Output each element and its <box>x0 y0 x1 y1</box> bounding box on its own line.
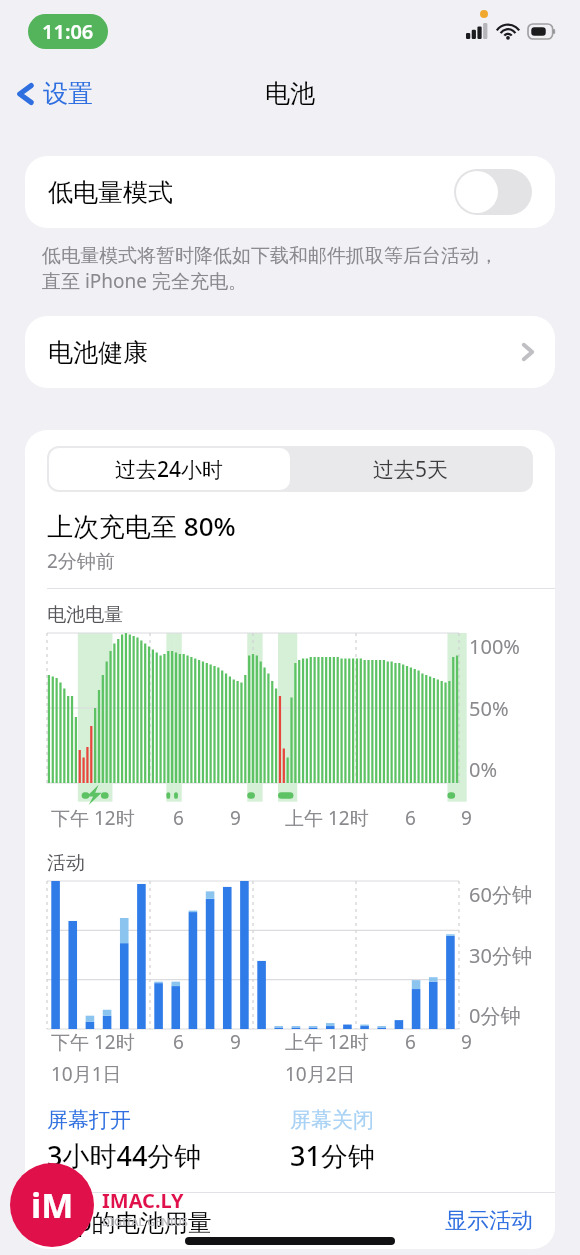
staticText: 60分钟 <box>469 881 532 908</box>
staticText: 0% <box>469 756 498 783</box>
button[interactable]: 过去24小时 <box>49 448 290 490</box>
staticText: 6 <box>173 1029 184 1055</box>
staticText: 10月2日 <box>285 1061 356 1087</box>
staticText: 下午 12时 <box>51 805 135 831</box>
button[interactable]: App的电池用量 <box>25 1193 555 1249</box>
staticText: App的电池用量 <box>47 1205 445 1238</box>
staticText: DIGITAL GENIUS <box>102 1214 188 1229</box>
staticText: 屏幕关闭 <box>290 1107 374 1133</box>
staticText: 3小时44分钟 <box>47 1137 202 1174</box>
staticText: 电池健康 <box>48 337 521 368</box>
staticText: 上午 12时 <box>285 1029 369 1055</box>
staticText: 6 <box>173 805 184 831</box>
staticText: 10月1日 <box>51 1061 122 1087</box>
staticText: 显示活动 <box>445 1207 533 1235</box>
staticText: 50% <box>469 695 509 722</box>
staticText: 6 <box>405 805 416 831</box>
button[interactable]: 电池健康 <box>25 316 555 388</box>
staticText: 上午 12时 <box>285 805 369 831</box>
staticText: 31分钟 <box>290 1137 375 1174</box>
staticText: 活动 <box>47 851 85 875</box>
staticText: 11:06 <box>42 18 94 45</box>
staticText: iM <box>31 1182 74 1228</box>
staticText: 低电量模式将暂时降低如下载和邮件抓取等后台活动， <box>42 244 498 268</box>
button[interactable]: 低电量模式 <box>25 156 555 228</box>
staticText: 上次充电至 80% <box>47 508 236 544</box>
staticText: 2分钟前 <box>47 548 115 574</box>
staticText: 6 <box>405 1029 416 1055</box>
staticText: 过去5天 <box>373 455 449 484</box>
staticText: 屏幕打开 <box>47 1107 131 1133</box>
staticText: 30分钟 <box>469 942 532 969</box>
staticText: 低电量模式 <box>48 177 454 208</box>
staticText: 9 <box>230 1029 241 1055</box>
staticText: 电池 <box>265 78 315 109</box>
staticText: 电池电量 <box>47 603 123 627</box>
staticText: 直至 iPhone 完全充电。 <box>42 268 247 294</box>
button[interactable]: 过去5天 <box>290 448 531 490</box>
staticText: 9 <box>230 805 241 831</box>
staticText: 100% <box>469 633 520 660</box>
staticText: 0分钟 <box>469 1002 521 1029</box>
button[interactable]: 设置 <box>0 72 105 115</box>
staticText: 设置 <box>43 78 93 109</box>
staticText: 下午 12时 <box>51 1029 135 1055</box>
staticText: 过去24小时 <box>115 455 224 484</box>
staticText: IMAC.LY <box>102 1187 184 1214</box>
button[interactable]: Low Power Mode toggle <box>454 169 532 215</box>
